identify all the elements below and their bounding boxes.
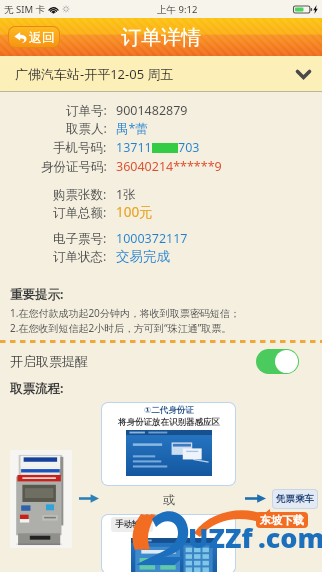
staticText: 返回 [29,29,55,45]
staticText: 上午 9:12 [157,3,198,16]
staticText: 禺*蕾 [116,120,148,137]
button[interactable]: 广佛汽车站-开平12-05 周五 [0,56,322,92]
staticText: 1张 [116,186,136,203]
staticText: 1.在您付款成功起20分钟内，将收到取票密码短信； [10,306,240,320]
staticText: 购票张数: [53,186,107,203]
staticText: 9001482879 [116,102,188,119]
staticText: 订单详情 [121,25,201,50]
staticText: 取票人: [66,120,107,137]
staticText: UZZf [188,519,253,556]
staticText: 取票流程: [10,380,64,397]
staticText: 广佛汽车站-开平12-05 周五 [15,65,174,83]
staticText: 身份证号码: [41,158,107,175]
staticText: 重要提示: [10,286,64,303]
staticText: .com [258,519,322,556]
staticText: 凭票乘车 [276,493,314,505]
staticText: 2.在您收到短信起2小时后，方可到“珠江通”取票。 [10,321,232,335]
staticText: 电子票号: [53,230,107,247]
staticText: 手机号码: [53,139,107,156]
staticText: 13711 [116,139,152,156]
staticText: 开启取票提醒 [10,353,88,369]
staticText: 1000372117 [116,230,188,247]
staticText: 36040214******9 [116,158,222,175]
staticText: 手动输入 [115,519,149,530]
button[interactable]: 凭票乘车 [273,490,317,508]
staticText: 或 [163,492,175,507]
staticText: 将身份证放在识别器感应区 [118,417,220,428]
staticText: 100元 [116,203,153,221]
staticText: 东坡下载 [260,513,304,527]
button[interactable]: 开启取票提醒 [0,343,322,379]
staticText: 订单状态: [53,248,107,265]
staticText: 交易完成 [116,248,170,265]
button[interactable]: 返回 [9,27,59,47]
staticText: ①二代身份证 [144,405,194,416]
staticText: 订单号: [66,102,107,119]
staticText: 无 SIM 卡 [4,3,45,16]
staticText: 703 [178,139,200,156]
staticText: 订单总额: [53,204,107,221]
other: 展开 [296,70,311,79]
